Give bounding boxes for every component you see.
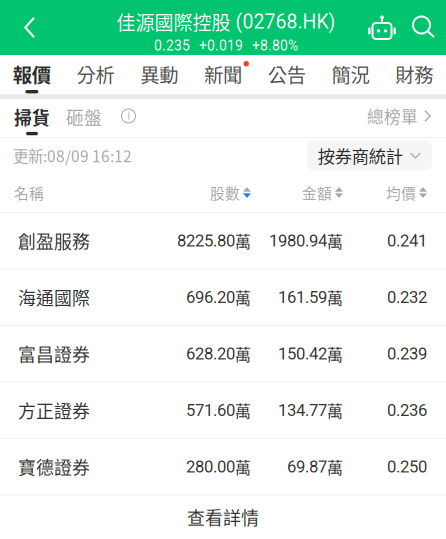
button[interactable]: 金額 <box>251 173 343 212</box>
button[interactable]: 異動 <box>127 55 191 94</box>
staticText: i <box>127 110 129 122</box>
staticText: (02768.HK) <box>230 10 335 33</box>
button[interactable]: 簡況 <box>319 55 382 94</box>
button[interactable]: 分析 <box>64 55 127 94</box>
staticText: 報價 <box>13 60 51 88</box>
staticText: 方正證券 <box>18 397 90 423</box>
button[interactable]: 寶德證券 <box>0 439 446 495</box>
staticText: 掃貨 <box>14 104 50 130</box>
staticText: 財務 <box>395 60 433 88</box>
staticText: 0.241 <box>387 231 427 250</box>
staticText: 萬 <box>327 342 343 365</box>
button[interactable]: About broker flow <box>102 99 136 137</box>
staticText: 0.232 <box>387 287 427 307</box>
staticText: 696.20 <box>186 287 235 307</box>
staticText: 均價 <box>386 182 416 203</box>
staticText: 萬 <box>235 286 251 309</box>
staticText: 海通國際 <box>18 284 90 310</box>
staticText: 新聞 <box>204 60 242 88</box>
staticText: 0.250 <box>387 457 427 476</box>
button[interactable]: 均價 <box>343 173 427 212</box>
staticText: 萬 <box>235 342 251 365</box>
staticText: 股數 <box>210 182 240 203</box>
staticText: 更新:08/09 16:12 <box>13 144 132 167</box>
staticText: 金額 <box>302 182 332 203</box>
staticText: 628.20 <box>186 344 235 363</box>
button[interactable]: Back <box>0 0 51 55</box>
staticText: 砸盤 <box>66 104 102 130</box>
staticText: 總榜單 <box>367 104 418 128</box>
staticText: 萬 <box>235 455 251 478</box>
staticText: 0.236 <box>387 400 427 420</box>
button[interactable]: Search <box>403 0 446 55</box>
staticText: 萬 <box>327 229 343 252</box>
button[interactable]: 掃貨 <box>0 99 66 137</box>
staticText: 萬 <box>235 399 251 422</box>
staticText: 萬 <box>327 399 343 422</box>
staticText: 佳源國際控股 <box>116 8 230 35</box>
staticText: 280.00 <box>186 457 235 476</box>
button[interactable]: 報價 <box>0 55 64 94</box>
button[interactable]: 海通國際 <box>0 269 446 326</box>
staticText: 69.87 <box>287 457 327 476</box>
staticText: 按券商統計 <box>318 143 403 168</box>
staticText: 查看詳情 <box>187 504 259 530</box>
staticText: 萬 <box>235 229 251 252</box>
staticText: 134.77 <box>278 400 327 420</box>
staticText: 0.235 +0.019 +8.80% <box>154 37 298 54</box>
staticText: 富昌證券 <box>18 341 90 367</box>
staticText: 1980.94 <box>269 231 327 250</box>
button[interactable]: 創盈服務 <box>0 213 446 269</box>
staticText: 簡況 <box>331 60 369 88</box>
staticText: 萬 <box>327 455 343 478</box>
button[interactable]: 方正證券 <box>0 382 446 439</box>
button[interactable]: 公告 <box>255 55 319 94</box>
button[interactable]: 新聞 <box>191 55 255 94</box>
staticText: 150.42 <box>278 344 327 363</box>
staticText: 萬 <box>327 286 343 309</box>
button[interactable]: 砸盤 <box>66 99 102 137</box>
staticText: 571.60 <box>186 400 235 420</box>
staticText: 名稱 <box>14 182 44 203</box>
staticText: 0.239 <box>387 344 427 363</box>
button[interactable]: 富昌證券 <box>0 326 446 382</box>
staticText: 161.59 <box>278 287 327 307</box>
button[interactable]: 總榜單 <box>367 99 446 137</box>
staticText: 創盈服務 <box>18 228 90 254</box>
button[interactable]: 股數 <box>140 173 251 212</box>
button[interactable]: 查看詳情 <box>0 495 446 538</box>
button[interactable]: AI assistant <box>361 0 403 55</box>
staticText: 公告 <box>268 60 306 88</box>
staticText: 8225.80 <box>177 231 235 250</box>
button[interactable]: 按券商統計 <box>307 141 432 170</box>
staticText: 異動 <box>140 60 178 88</box>
button[interactable]: 財務 <box>382 55 446 94</box>
staticText: 寶德證券 <box>18 454 90 480</box>
staticText: 分析 <box>77 60 115 88</box>
